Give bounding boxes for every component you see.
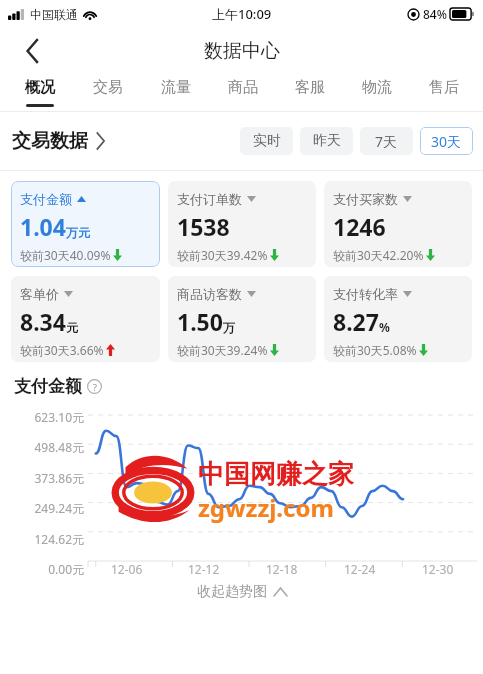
staticText: 较前30天39.42% bbox=[177, 247, 268, 263]
staticText: 商品访客数 bbox=[177, 286, 242, 302]
staticText: 1.04 bbox=[20, 211, 66, 242]
button[interactable]: 支付订单数 bbox=[168, 181, 316, 267]
staticText: 昨天 bbox=[313, 132, 341, 150]
staticText: 交易数据 bbox=[12, 129, 88, 153]
staticText: 249.24元 bbox=[34, 500, 84, 516]
staticText: 1538 bbox=[177, 211, 230, 242]
button[interactable]: 30天 bbox=[420, 127, 473, 155]
button[interactable]: 售后 bbox=[410, 73, 477, 111]
staticText: ? bbox=[93, 381, 97, 393]
button[interactable]: Back bbox=[10, 29, 54, 73]
staticText: 概况 bbox=[25, 78, 55, 97]
button[interactable]: 客单价 bbox=[11, 276, 160, 362]
staticText: 8.27 bbox=[333, 306, 379, 337]
staticText: 较前30天3.66% bbox=[20, 342, 104, 358]
staticText: 12-30 bbox=[422, 561, 454, 577]
staticText: 收起趋势图 bbox=[197, 583, 267, 601]
staticText: 中国联通 bbox=[30, 7, 78, 22]
staticText: 12-24 bbox=[344, 561, 376, 577]
staticText: 12-12 bbox=[188, 561, 220, 577]
staticText: 较前30天40.09% bbox=[20, 247, 111, 263]
staticText: 124.62元 bbox=[34, 531, 84, 547]
staticText: 1.50 bbox=[177, 306, 223, 337]
staticText: 售后 bbox=[429, 78, 459, 97]
staticText: 84% bbox=[423, 6, 447, 22]
button[interactable]: 收起趋势图 bbox=[0, 583, 483, 601]
button[interactable]: 交易 bbox=[74, 73, 142, 111]
staticText: % bbox=[379, 319, 390, 335]
button[interactable]: 客服 bbox=[276, 73, 343, 111]
staticText: 373.86元 bbox=[34, 470, 84, 486]
staticText: 商品 bbox=[228, 78, 258, 97]
button[interactable]: 交易数据 bbox=[12, 129, 105, 153]
staticText: 物流 bbox=[362, 78, 392, 97]
staticText: 万元 bbox=[66, 225, 90, 240]
staticText: 实时 bbox=[253, 132, 281, 150]
staticText: 较前30天39.24% bbox=[177, 342, 268, 358]
staticText: 较前30天42.20% bbox=[333, 247, 424, 263]
button[interactable]: 商品 bbox=[209, 73, 276, 111]
staticText: 元 bbox=[66, 320, 78, 335]
staticText: 623.10元 bbox=[34, 409, 84, 425]
staticText: 12-06 bbox=[111, 561, 143, 577]
button[interactable]: 流量 bbox=[142, 73, 209, 111]
staticText: 498.48元 bbox=[34, 439, 84, 455]
staticText: 支付金额 bbox=[14, 376, 82, 397]
button[interactable]: 昨天 bbox=[300, 127, 353, 155]
staticText: 客单价 bbox=[20, 286, 59, 302]
staticText: 1246 bbox=[333, 211, 386, 242]
staticText: 支付转化率 bbox=[333, 286, 398, 302]
staticText: 8.34 bbox=[20, 306, 66, 337]
button[interactable]: Help bbox=[87, 379, 102, 394]
button[interactable]: 实时 bbox=[240, 127, 293, 155]
staticText: 中国网赚之家 bbox=[198, 458, 354, 491]
button[interactable]: 支付金额 bbox=[11, 181, 160, 267]
staticText: 较前30天5.08% bbox=[333, 342, 417, 358]
button[interactable]: 物流 bbox=[343, 73, 410, 111]
staticText: 交易 bbox=[93, 78, 123, 97]
staticText: 30天 bbox=[431, 132, 462, 151]
staticText: 流量 bbox=[161, 78, 191, 97]
staticText: 支付买家数 bbox=[333, 191, 398, 207]
staticText: 0.00元 bbox=[48, 561, 84, 577]
staticText: 支付订单数 bbox=[177, 191, 242, 207]
staticText: zgwzzj.com bbox=[198, 491, 334, 524]
staticText: 支付金额 bbox=[20, 191, 72, 207]
staticText: 数据中心 bbox=[204, 39, 280, 63]
button[interactable]: 7天 bbox=[360, 127, 413, 155]
button[interactable]: 支付买家数 bbox=[324, 181, 472, 267]
button[interactable]: 支付转化率 bbox=[324, 276, 472, 362]
staticText: 上午10:09 bbox=[212, 5, 272, 23]
staticText: 12-18 bbox=[266, 561, 298, 577]
button[interactable]: 概况 bbox=[6, 73, 74, 111]
staticText: 万 bbox=[223, 320, 235, 335]
staticText: 7天 bbox=[375, 132, 398, 151]
staticText: 客服 bbox=[295, 78, 325, 97]
button[interactable]: 商品访客数 bbox=[168, 276, 316, 362]
